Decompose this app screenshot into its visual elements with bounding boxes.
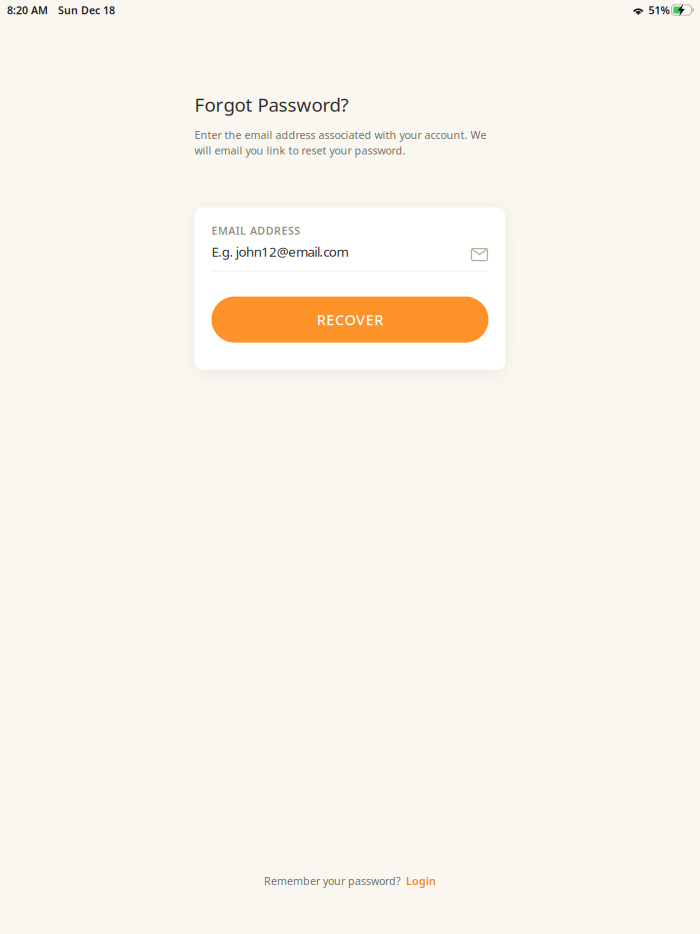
button[interactable]: EMAIL ADDRESS xyxy=(211,223,488,272)
staticText: 51% xyxy=(648,3,669,17)
staticText: RECOVER xyxy=(317,310,383,329)
staticText: Login xyxy=(406,874,436,888)
staticText: Forgot Password? xyxy=(194,92,348,117)
staticText: Sun Dec 18 xyxy=(58,3,115,17)
staticText: Enter the email address associated with … xyxy=(194,128,486,157)
button[interactable]: RECOVER xyxy=(211,297,488,343)
staticText: Remember your password? xyxy=(264,874,401,888)
button[interactable]: Login xyxy=(401,874,436,888)
staticText: 8:20 AM xyxy=(7,3,48,17)
staticText: E.g. john12@email.com xyxy=(211,243,348,260)
staticText: EMAIL ADDRESS xyxy=(211,223,300,238)
